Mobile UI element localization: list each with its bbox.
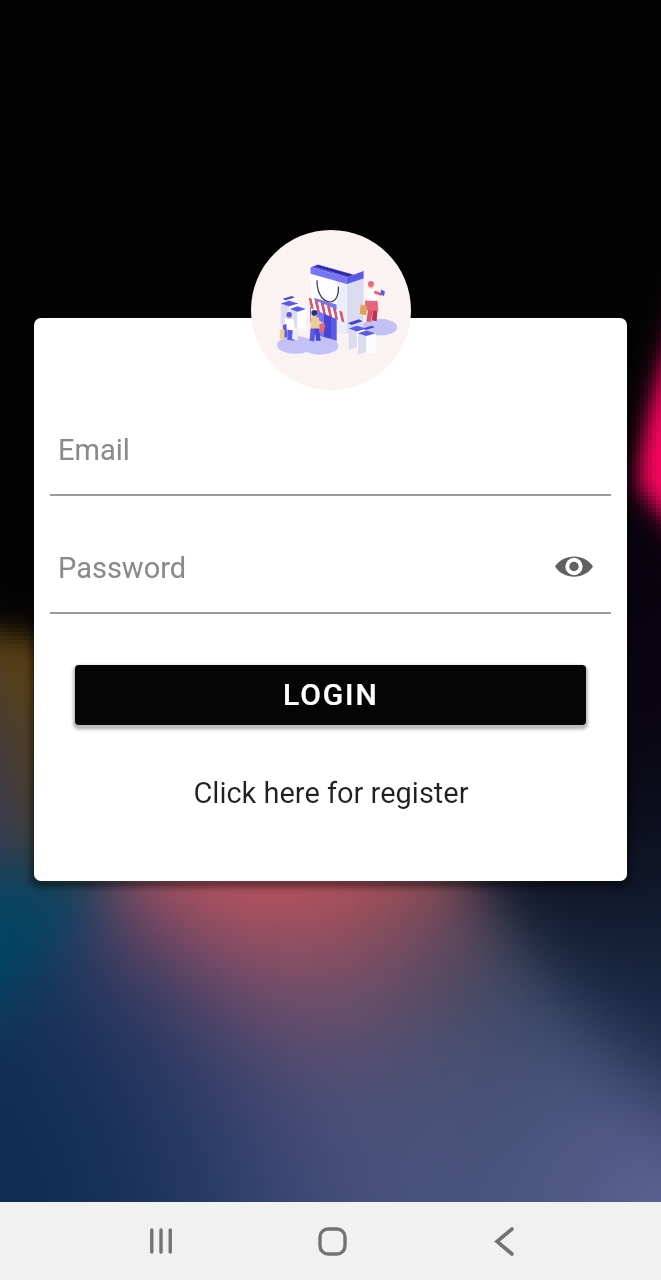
button[interactable]: Email [34,418,627,496]
button[interactable]: Show password [550,542,598,590]
staticText: Email [58,433,130,467]
button[interactable]: Recent apps [131,1211,191,1271]
button[interactable]: Back [474,1211,534,1271]
staticText: LOGIN [283,677,379,712]
button[interactable]: LOGIN [75,665,586,725]
button[interactable]: Home [302,1211,362,1271]
button[interactable]: Click here for register [173,768,489,818]
staticText: Password [58,551,187,585]
staticText: Click here for register [193,776,469,810]
